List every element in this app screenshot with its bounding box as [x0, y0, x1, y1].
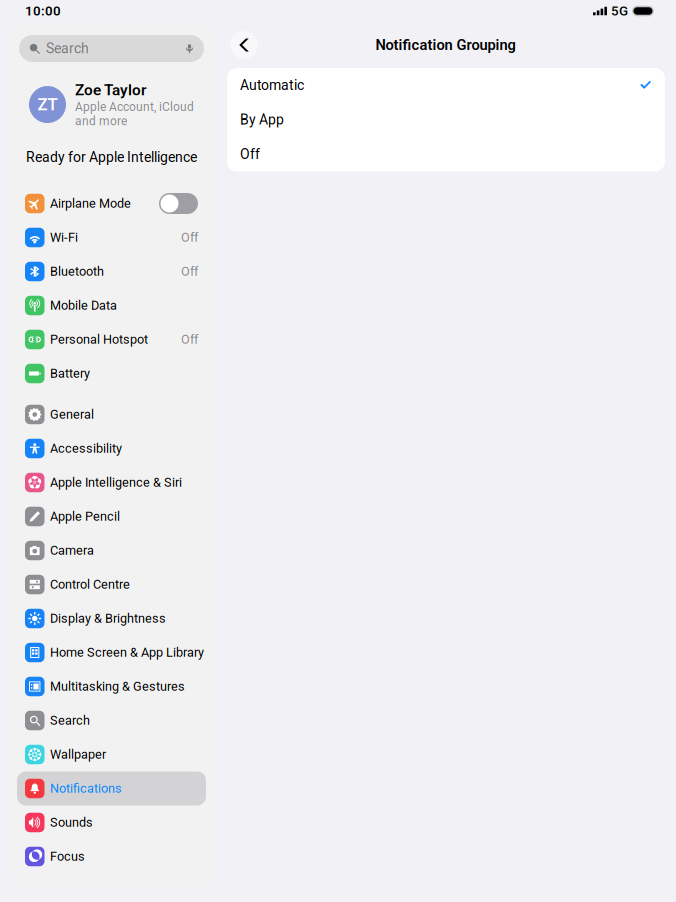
button[interactable]: Camera — [17, 533, 206, 567]
staticText: Off — [240, 146, 260, 162]
button[interactable]: Multitasking & Gestures — [17, 669, 206, 703]
button[interactable]: Airplane Mode — [17, 186, 206, 220]
staticText: Mobile Data — [50, 298, 117, 313]
staticText: Display & Brightness — [50, 611, 166, 626]
button[interactable]: By App — [227, 102, 665, 137]
staticText: Bluetooth — [50, 264, 104, 279]
staticText: Automatic — [240, 77, 304, 93]
button[interactable]: Bluetooth — [17, 254, 206, 288]
button[interactable]: Home Screen & App Library — [17, 635, 206, 669]
button[interactable]: Apple Pencil — [17, 499, 206, 533]
staticText: Notifications — [50, 781, 122, 796]
button[interactable]: Mobile Data — [17, 288, 206, 322]
staticText: Apple Account, iCloud — [75, 100, 194, 114]
staticText: Wallpaper — [50, 747, 106, 762]
button[interactable]: General — [17, 397, 206, 431]
button[interactable]: Personal Hotspot — [17, 322, 206, 356]
button[interactable]: Control Centre — [17, 567, 206, 601]
staticText: Battery — [50, 366, 90, 381]
button[interactable]: Display & Brightness — [17, 601, 206, 635]
staticText: Off — [181, 332, 198, 347]
button[interactable]: Back — [230, 31, 258, 59]
staticText: Search — [46, 40, 89, 57]
button[interactable]: Wallpaper — [17, 737, 206, 771]
staticText: Off — [181, 230, 198, 245]
staticText: Ready for Apple Intelligence — [26, 149, 197, 165]
staticText: Apple Intelligence & Siri — [50, 475, 182, 490]
staticText: Apple Pencil — [50, 509, 120, 524]
button[interactable]: Sounds — [17, 805, 206, 839]
staticText: Airplane Mode — [50, 196, 131, 211]
staticText: Off — [181, 264, 198, 279]
staticText: Accessibility — [50, 441, 122, 456]
staticText: 10:00 — [25, 3, 61, 19]
staticText: 5G — [611, 3, 628, 19]
staticText: ZT — [37, 95, 57, 114]
staticText: Zoe Taylor — [75, 81, 147, 99]
button[interactable]: Notifications — [17, 771, 206, 805]
button[interactable]: Battery — [17, 356, 206, 390]
button[interactable]: Apple Intelligence & Siri — [17, 465, 206, 499]
staticText: Search — [50, 713, 90, 728]
staticText: Personal Hotspot — [50, 332, 148, 347]
button[interactable]: ZT — [10, 62, 215, 128]
button[interactable]: Accessibility — [17, 431, 206, 465]
button[interactable]: Focus — [17, 839, 206, 873]
staticText: By App — [240, 111, 284, 128]
staticText: Control Centre — [50, 577, 130, 592]
button[interactable]: Search — [17, 703, 206, 737]
staticText: Notification Grouping — [375, 36, 515, 54]
staticText: Multitasking & Gestures — [50, 679, 185, 694]
button[interactable]: Off — [227, 137, 665, 171]
staticText: and more — [75, 114, 127, 128]
button[interactable]: Wi-Fi — [17, 220, 206, 254]
button[interactable]: Automatic — [227, 68, 665, 102]
staticText: Home Screen & App Library — [50, 645, 204, 660]
staticText: Camera — [50, 543, 94, 558]
button[interactable]: Ready for Apple Intelligence — [10, 128, 215, 186]
staticText: Wi-Fi — [50, 230, 78, 245]
staticText: Focus — [50, 849, 85, 864]
staticText: General — [50, 407, 94, 422]
staticText: Sounds — [50, 815, 93, 830]
